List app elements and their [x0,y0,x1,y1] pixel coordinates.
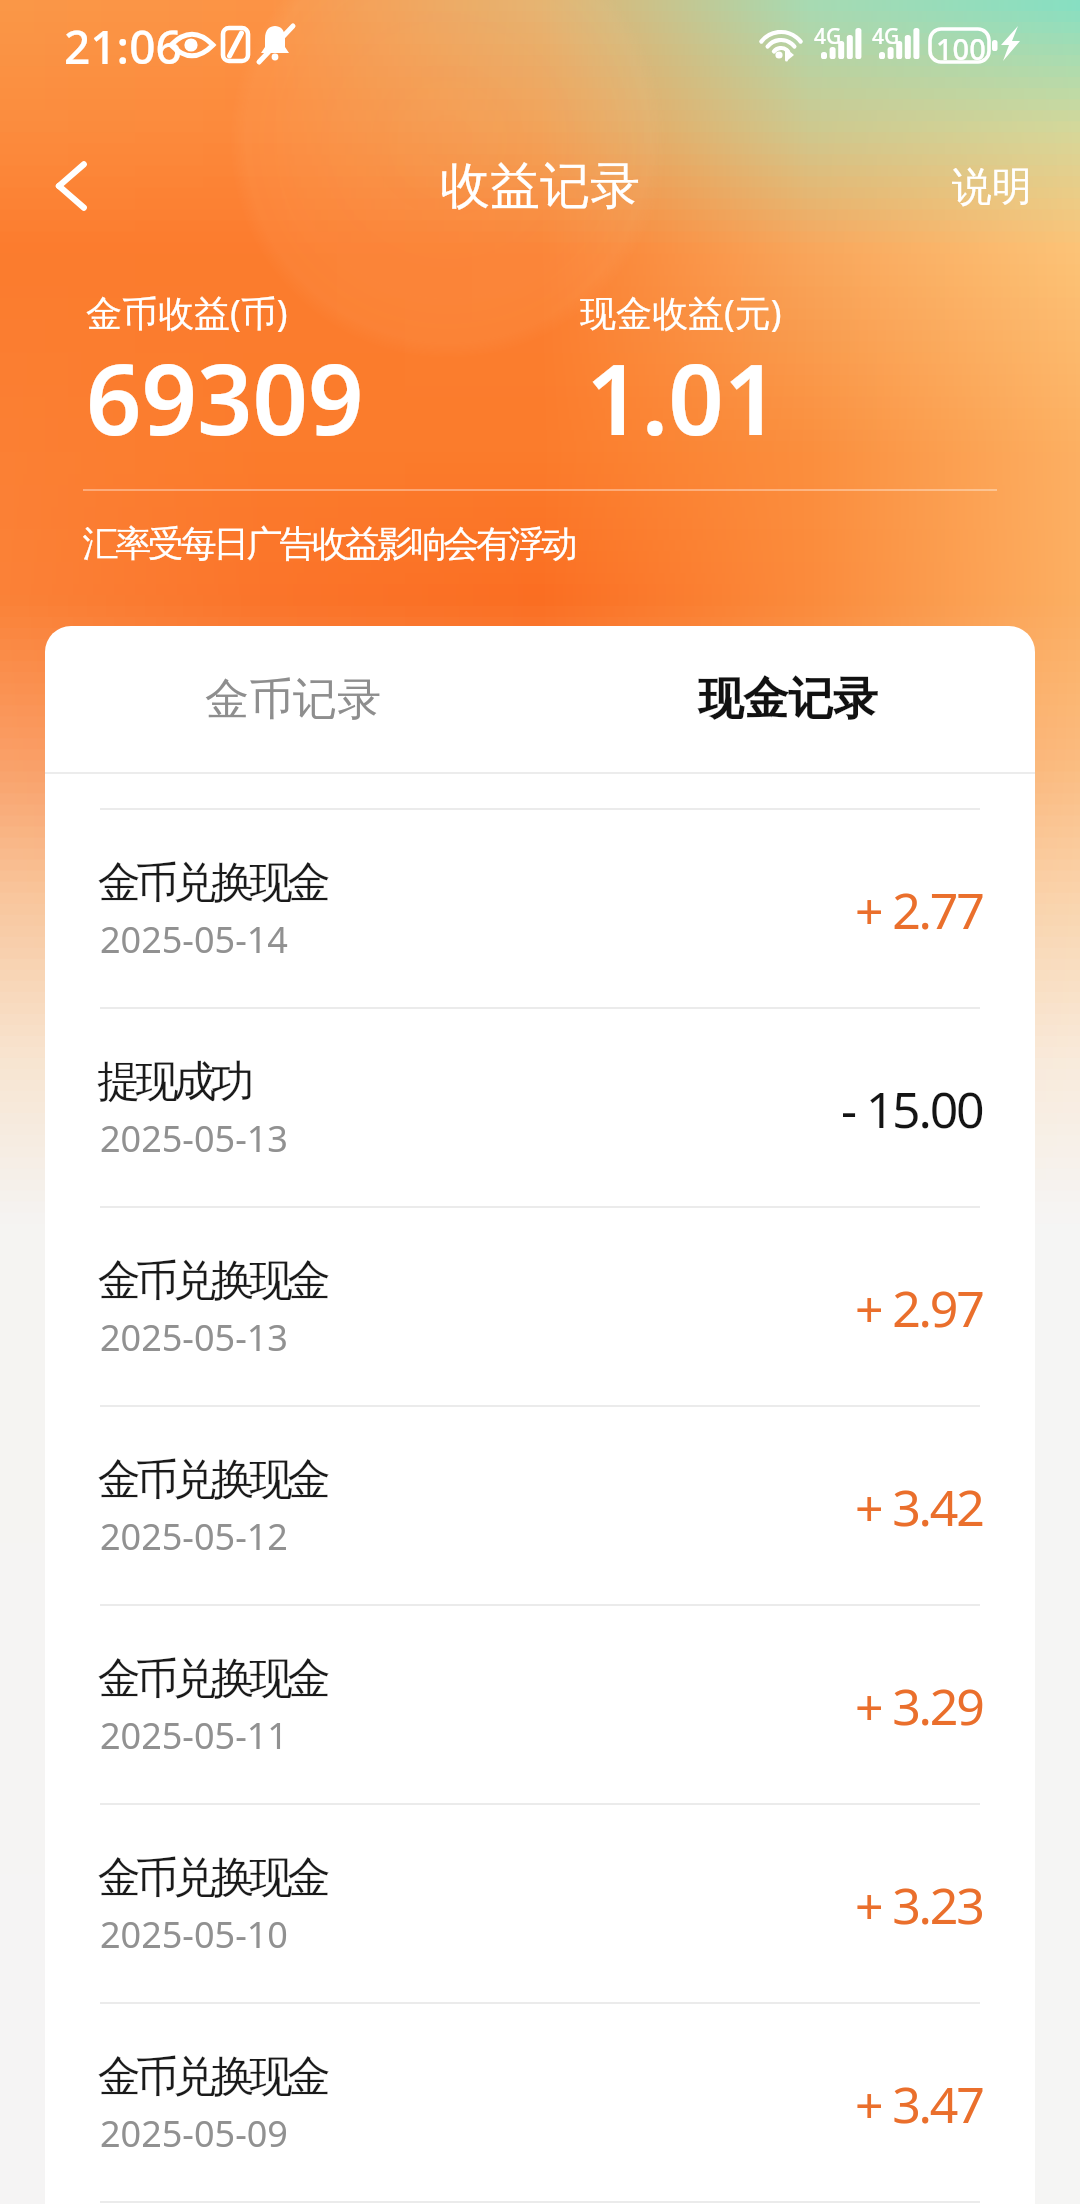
staticText: 4G [872,22,900,51]
button[interactable]: 金币兑换现金 [45,810,1035,1009]
staticText: 2025-05-09 [100,2109,288,2158]
staticText: 金币记录 [205,672,381,727]
button[interactable]: 金币兑换现金 [45,1407,1035,1606]
staticText: 金币兑换现金 [100,1851,328,1905]
staticText: 4G [814,22,842,51]
staticText: - 15.00 [841,1075,983,1143]
staticText: 现金收益(元) [580,288,782,337]
staticText: + 3.23 [855,1871,983,1939]
staticText: + 2.77 [855,876,983,944]
staticText: + 3.42 [855,1473,983,1541]
staticText: 21:06 [64,15,182,78]
staticText: 提现成功 [100,1055,252,1109]
staticText: 金币兑换现金 [100,2050,328,2104]
button[interactable]: 金币兑换现金 [45,1208,1035,1407]
staticText: 69309 [86,331,364,463]
staticText: + 3.47 [855,2070,983,2138]
staticText: 1.01 [586,331,780,463]
staticText: 2025-05-13 [100,1114,288,1163]
staticText: 2025-05-10 [100,1910,288,1959]
button[interactable]: 说明 [952,147,1032,225]
staticText: 2025-05-12 [100,1512,288,1561]
button[interactable]: 金币记录 [45,626,540,772]
button[interactable]: 金币兑换现金 [45,1805,1035,2004]
staticText: 2025-05-14 [100,915,288,964]
staticText: 2025-05-13 [100,1313,288,1362]
staticText: 2025-05-11 [100,1711,288,1760]
staticText: 金币收益(币) [86,288,288,337]
staticText: 收益记录 [440,155,640,218]
button[interactable]: 现金记录 [540,626,1035,772]
button[interactable]: 提现成功 [45,1009,1035,1208]
button[interactable]: Back [37,153,103,219]
staticText: 汇率受每日广告收益影响会有浮动 [84,521,576,566]
staticText: 金币兑换现金 [100,1254,328,1308]
staticText: + 2.97 [855,1274,983,1342]
staticText: 现金记录 [698,671,878,728]
staticText: 说明 [952,161,1032,211]
staticText: 金币兑换现金 [100,1453,328,1507]
button[interactable]: 金币兑换现金 [45,2004,1035,2203]
staticText: 金币兑换现金 [100,856,328,910]
staticText: + 3.29 [855,1672,983,1740]
button[interactable]: 金币兑换现金 [45,1606,1035,1805]
staticText: 金币兑换现金 [100,1652,328,1706]
staticText: 100 [936,29,986,68]
